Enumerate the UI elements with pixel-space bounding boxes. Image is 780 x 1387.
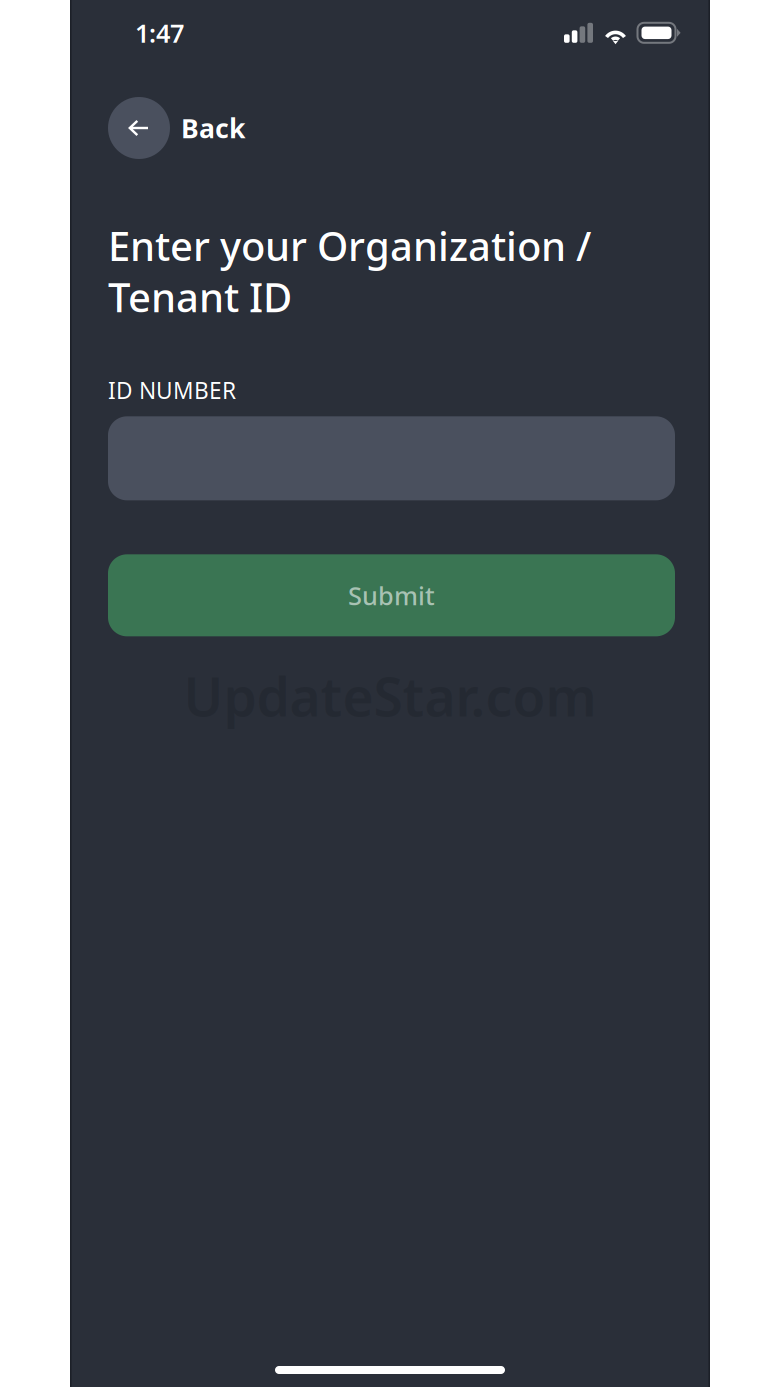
button[interactable]: Back [70,97,710,159]
button[interactable]: ID number [70,416,675,500]
staticText: Enter your Organization / Tenant ID [108,219,591,323]
staticText: ID NUMBER [108,375,236,405]
button[interactable]: Submit [70,554,675,636]
staticText: Submit [348,578,435,612]
staticText: Back [181,110,246,146]
staticText: 1:47 [135,16,184,50]
